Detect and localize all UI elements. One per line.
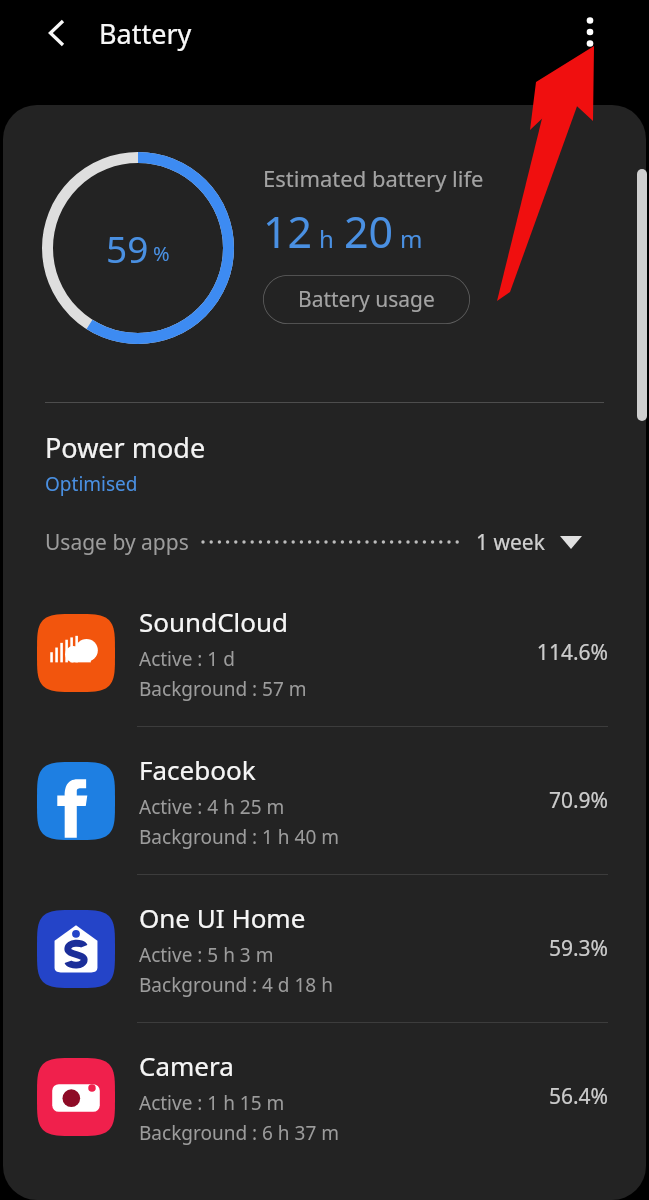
staticText: h [319, 222, 334, 255]
staticText: 56.4% [548, 1082, 608, 1111]
staticText: 12 [263, 202, 313, 261]
button[interactable]: Camera [3, 1023, 646, 1170]
staticText: Battery usage [298, 285, 435, 314]
staticText: 70.9% [548, 786, 608, 815]
staticText: Usage by apps [45, 528, 189, 557]
button[interactable]: Back [30, 6, 84, 60]
button[interactable]: Facebook [3, 727, 646, 874]
staticText: m [400, 222, 423, 255]
button[interactable]: SoundCloud [3, 579, 646, 726]
button[interactable]: 1 week [476, 528, 582, 557]
staticText: 59 [106, 223, 149, 273]
staticText: 114.6% [536, 638, 608, 667]
staticText: Background : 6 h 37 m [139, 1120, 339, 1146]
staticText: Active : 4 h 25 m [139, 794, 285, 820]
staticText: Facebook [139, 752, 256, 787]
staticText: Active : 1 h 15 m [139, 1090, 285, 1116]
button[interactable]: Battery usage [263, 275, 470, 324]
staticText: 20 [344, 202, 394, 261]
staticText: Estimated battery life [263, 163, 484, 193]
staticText: 1 week [476, 528, 545, 557]
staticText: 59.3% [548, 934, 608, 963]
staticText: Power mode [45, 429, 206, 466]
staticText: Battery [99, 15, 192, 52]
staticText: SoundCloud [139, 604, 289, 639]
button[interactable]: More options [562, 4, 618, 60]
staticText: Background : 4 d 18 h [139, 972, 333, 998]
staticText: Background : 57 m [139, 676, 307, 702]
staticText: Background : 1 h 40 m [139, 824, 339, 850]
button[interactable]: One UI Home [3, 875, 646, 1022]
staticText: One UI Home [139, 900, 306, 935]
button[interactable]: Power mode [3, 403, 646, 505]
staticText: Active : 5 h 3 m [139, 942, 274, 968]
staticText: Optimised [45, 471, 138, 497]
staticText: Camera [139, 1048, 234, 1083]
staticText: % [153, 240, 170, 267]
staticText: Active : 1 d [139, 646, 235, 672]
